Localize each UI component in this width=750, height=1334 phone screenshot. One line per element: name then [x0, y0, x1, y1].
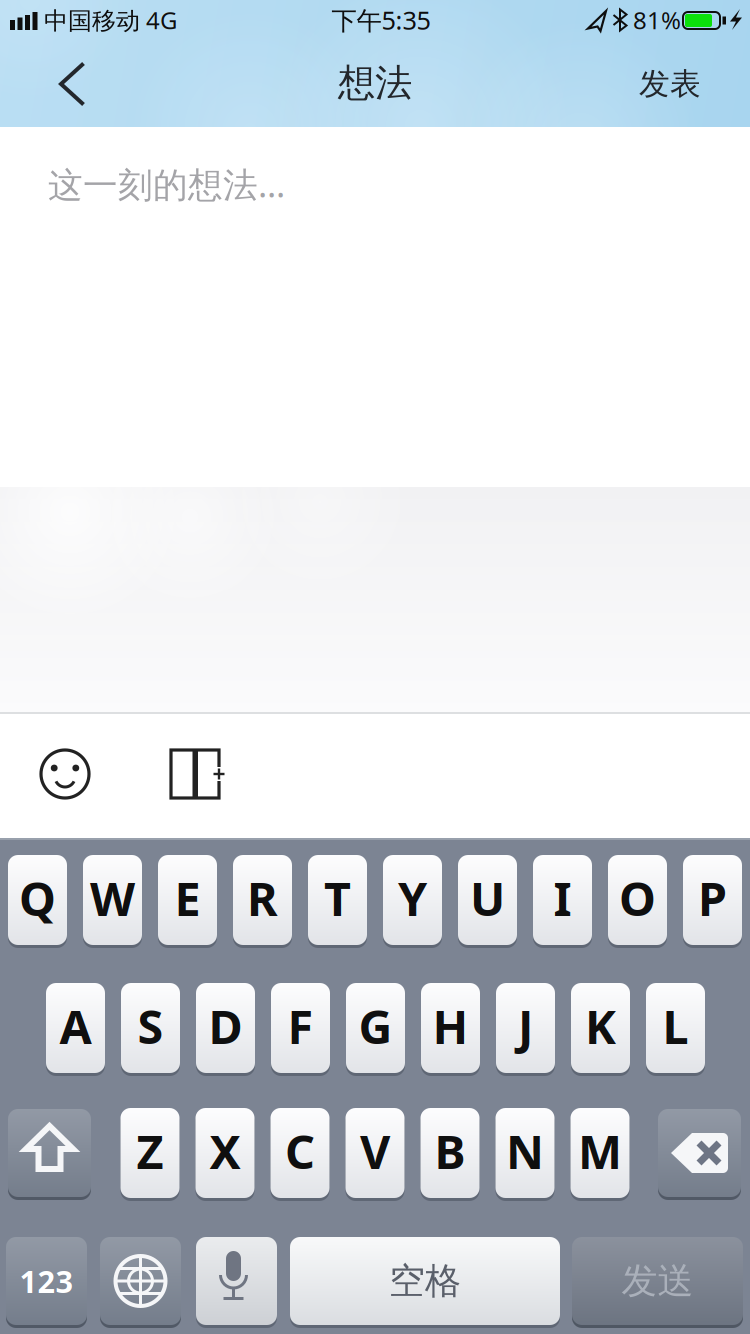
staticText: 发送 [621, 1259, 693, 1303]
button[interactable]: 删除 [658, 1107, 741, 1198]
button[interactable]: M [570, 1106, 629, 1199]
button[interactable]: V [345, 1106, 404, 1199]
button[interactable]: 切换键盘 [100, 1235, 181, 1326]
staticText: V [360, 1120, 390, 1182]
button[interactable]: Shift [8, 1107, 91, 1198]
staticText: X [209, 1120, 240, 1182]
staticText: R [247, 867, 278, 929]
button[interactable]: 数字键盘 [6, 1235, 87, 1326]
button[interactable]: 返回 [25, 39, 115, 129]
button[interactable]: 图片 [160, 739, 230, 809]
staticText: P [698, 867, 727, 929]
button[interactable]: P [683, 853, 742, 946]
staticText: 123 [19, 1261, 73, 1301]
staticText: W [90, 867, 135, 929]
button[interactable]: Y [383, 853, 442, 946]
staticText: I [553, 867, 571, 929]
button[interactable]: X [195, 1106, 254, 1199]
button[interactable]: O [608, 853, 667, 946]
button[interactable]: D [196, 981, 255, 1074]
staticText: T [324, 867, 351, 929]
button[interactable]: E [158, 853, 217, 946]
button[interactable]: J [496, 981, 555, 1074]
staticText: 这一刻的想法... [48, 161, 285, 207]
button[interactable]: 表情 [30, 739, 100, 809]
button[interactable]: W [83, 853, 142, 946]
staticText: G [358, 995, 392, 1057]
staticText: A [59, 995, 91, 1057]
staticText: S [137, 995, 163, 1057]
button[interactable]: F [271, 981, 330, 1074]
staticText: Q [19, 867, 56, 929]
button[interactable]: S [121, 981, 180, 1074]
staticText: Y [398, 867, 427, 929]
button[interactable]: R [233, 853, 292, 946]
staticText: M [578, 1120, 622, 1182]
staticText: C [285, 1120, 315, 1182]
staticText: U [470, 867, 505, 929]
button[interactable]: Z [120, 1106, 179, 1199]
staticText: L [662, 995, 688, 1057]
staticText: 空格 [389, 1259, 461, 1303]
button[interactable]: Q [8, 853, 67, 946]
button[interactable]: 发送 [572, 1235, 743, 1326]
staticText: 想法 [338, 60, 412, 106]
button[interactable]: K [571, 981, 630, 1074]
button[interactable]: U [458, 853, 517, 946]
staticText: Z [136, 1120, 163, 1182]
button[interactable]: B [420, 1106, 479, 1199]
staticText: 发表 [639, 65, 701, 103]
staticText: B [434, 1120, 465, 1182]
staticText: O [619, 867, 656, 929]
button[interactable]: H [421, 981, 480, 1074]
button[interactable]: N [495, 1106, 554, 1199]
button[interactable]: T [308, 853, 367, 946]
staticText: 下午5:35 [331, 3, 430, 37]
staticText: K [585, 995, 616, 1057]
button[interactable]: I [533, 853, 592, 946]
staticText: 81% [633, 4, 681, 36]
staticText: H [432, 995, 468, 1057]
button[interactable]: C [270, 1106, 329, 1199]
staticText: J [518, 995, 533, 1057]
staticText: D [208, 995, 242, 1057]
button[interactable]: L [646, 981, 705, 1074]
staticText: F [287, 995, 313, 1057]
button[interactable]: 空格 [290, 1235, 560, 1326]
staticText: 中国移动 4G [44, 4, 177, 36]
button[interactable]: 听写 [196, 1235, 277, 1326]
button[interactable]: A [46, 981, 105, 1074]
staticText: N [506, 1120, 544, 1182]
button[interactable]: 发表 [605, 40, 735, 127]
staticText: E [174, 867, 200, 929]
button[interactable]: G [346, 981, 405, 1074]
